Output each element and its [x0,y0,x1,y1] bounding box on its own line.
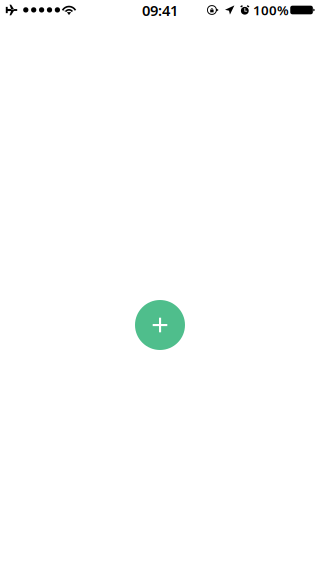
staticText: 100% [253,1,289,19]
staticText: 09:41 [142,0,178,20]
button[interactable]: Add [135,300,185,350]
